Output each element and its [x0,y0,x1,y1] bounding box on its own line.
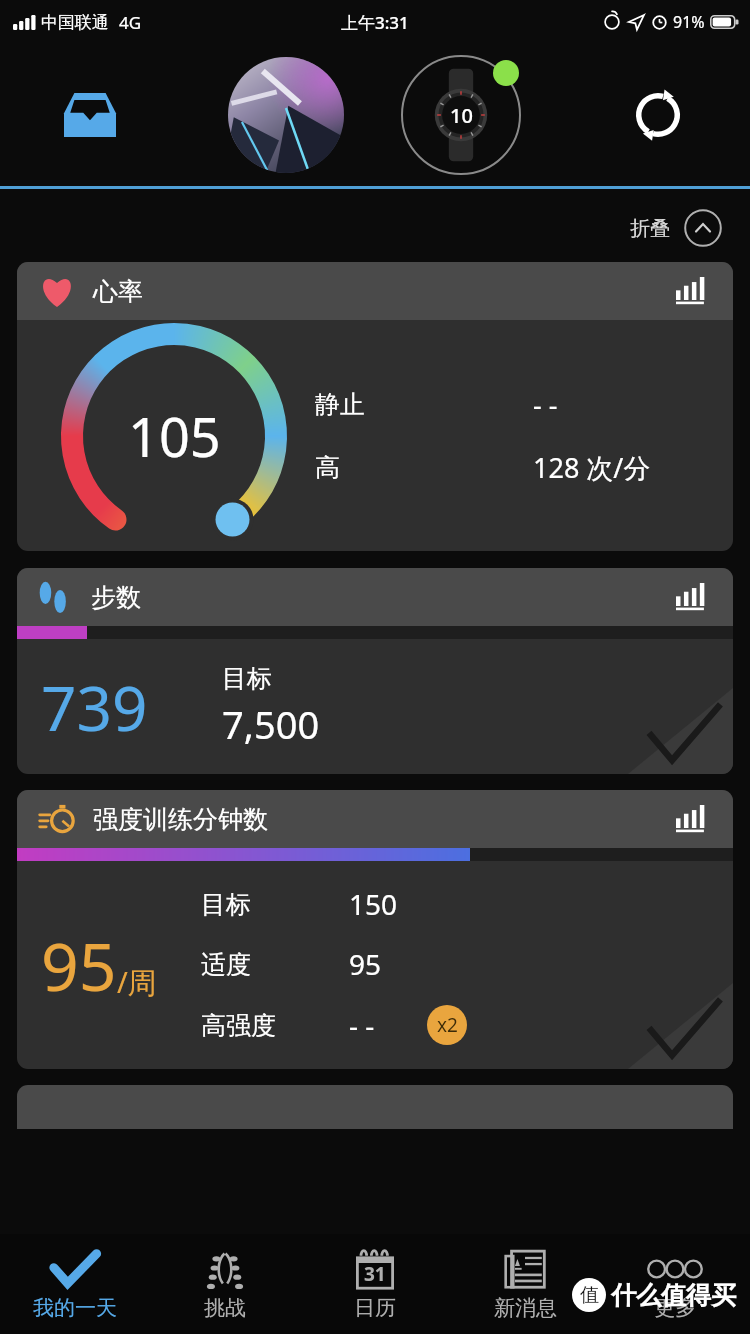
staticText: 105 [128,399,221,473]
staticText: /周 [117,962,157,1002]
staticText: 上午3:31 [341,11,409,34]
button[interactable]: Profile [228,57,344,173]
staticText: 什么值得买 [611,1280,736,1311]
button[interactable]: Chart [671,577,711,617]
staticText: 心率 [93,276,143,307]
staticText: 739 [41,665,148,749]
button[interactable]: 挑战 [150,1234,300,1334]
staticText: 目标 [201,889,251,920]
staticText: 目标 [222,663,272,694]
staticText: 更多 [654,1295,696,1321]
staticText: 150 [349,885,398,923]
staticText: - - [533,386,558,423]
button[interactable]: 折叠 [624,205,728,251]
staticText: 我的一天 [33,1295,117,1321]
staticText: 日历 [354,1295,396,1321]
staticText: 中国联通 [41,12,109,33]
button[interactable]: Sync [626,83,690,147]
staticText: 4G [119,11,142,34]
staticText: 新消息 [494,1295,557,1321]
button[interactable]: 强度训练分钟数 [17,790,733,1069]
button[interactable]: 31 [300,1234,450,1334]
staticText: 91% [673,11,705,33]
button[interactable]: Chart [671,799,711,839]
staticText: 适度 [201,949,251,980]
button[interactable]: 我的一天 [0,1234,150,1334]
staticText: 31 [364,1261,386,1287]
button[interactable]: Inbox [58,83,122,147]
staticText: 强度训练分钟数 [93,804,268,835]
staticText: 7,500 [222,698,320,750]
staticText: 高 [315,452,340,483]
button[interactable]: 更多 [600,1234,750,1334]
staticText: 高强度 [201,1010,276,1041]
staticText: 静止 [315,389,365,420]
staticText: 步数 [91,582,141,613]
staticText: x2 [437,1012,458,1038]
staticText: 128 次/分 [533,449,651,486]
staticText: 挑战 [204,1295,246,1321]
button[interactable]: Device [400,54,522,176]
button[interactable]: Chart [671,271,711,311]
staticText: 值 [580,1283,599,1307]
staticText: 95 [349,945,382,983]
button[interactable]: 心率 [17,262,733,551]
staticText: - - [349,1006,375,1044]
button[interactable]: 步数 [17,568,733,774]
staticText: 95 [41,920,117,1010]
button[interactable]: 新消息 [450,1234,600,1334]
staticText: 10 [450,102,473,129]
staticText: 折叠 [630,216,670,241]
